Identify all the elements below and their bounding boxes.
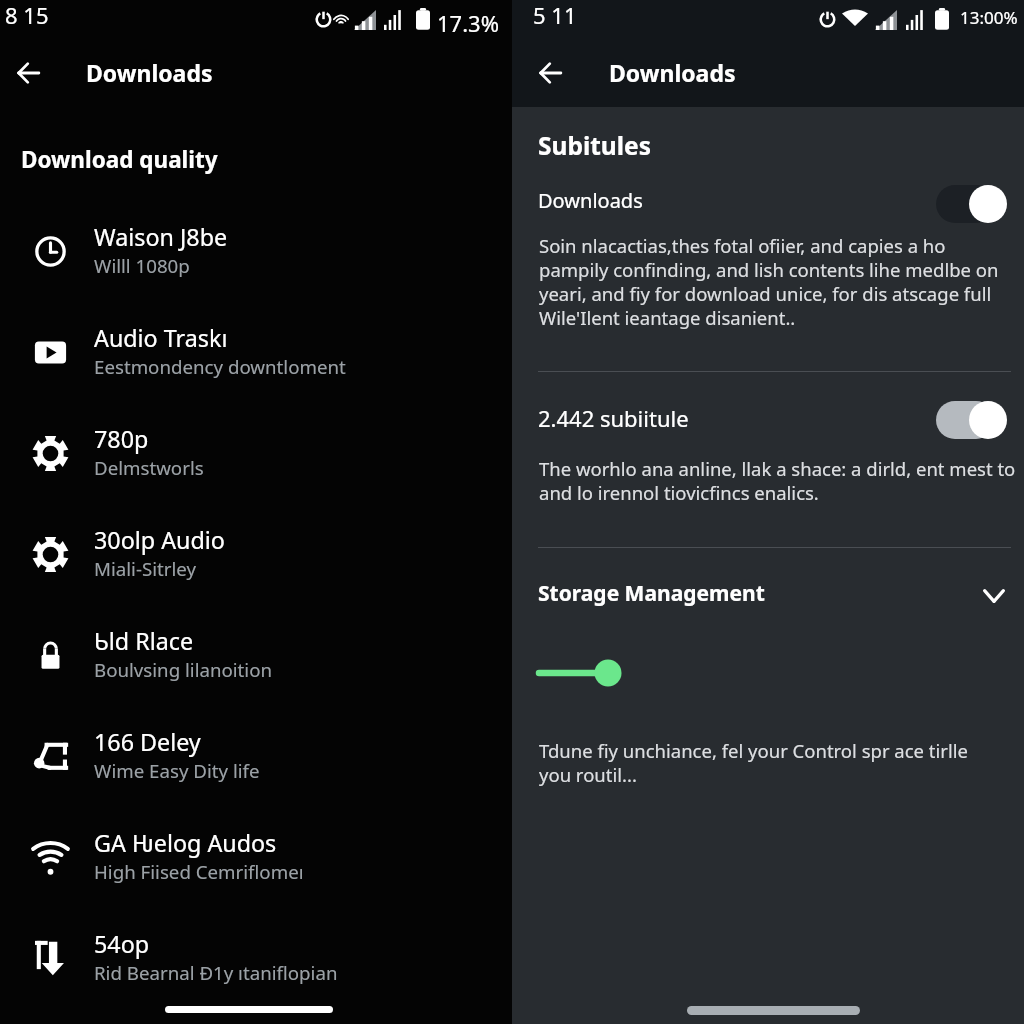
button[interactable]: Toggle 2.442 subiitule	[935, 401, 1007, 439]
button[interactable]: Back	[525, 48, 575, 98]
staticText: Downloads	[609, 57, 736, 88]
button[interactable]: Toggle Downloads	[935, 185, 1007, 223]
staticText: 8 15	[5, 0, 49, 30]
staticText: Tdune fiy unchiance, fel your Control sp…	[539, 738, 968, 787]
staticText: The worhlo ana anline, llak a shace: a d…	[539, 456, 1016, 505]
staticText: Boulvsing lilanoition	[94, 657, 273, 682]
staticText: 54op	[94, 928, 150, 960]
staticText: Downloads	[538, 187, 643, 214]
button[interactable]: 54op	[0, 914, 512, 1015]
staticText: 2.442 subiitule	[538, 403, 689, 433]
button[interactable]: Back	[3, 48, 53, 98]
staticText: Downloads	[86, 57, 213, 88]
staticText: Audio Traskı	[94, 322, 228, 354]
staticText: 5 11	[533, 0, 577, 30]
button[interactable]: Waison J8be	[0, 207, 512, 308]
staticText: 166 Deley	[94, 726, 201, 758]
staticText: Waison J8be	[94, 221, 228, 253]
staticText: 30olp Audio	[94, 524, 225, 556]
staticText: High Fiised Cemriflomeı	[94, 859, 304, 884]
button[interactable]: 30olp Audio	[0, 510, 512, 611]
staticText: 17.3%	[437, 8, 499, 38]
staticText: Delmstworls	[94, 455, 204, 480]
staticText: Willl 1080p	[94, 253, 190, 278]
staticText: Storage Management	[538, 579, 765, 608]
staticText: Download quality	[21, 144, 218, 175]
staticText: Wime Easy Dity life	[94, 758, 260, 783]
button[interactable]: Audio Traskı	[0, 308, 512, 409]
button[interactable]: Storage slider	[532, 650, 652, 696]
button[interactable]	[532, 570, 1024, 622]
button[interactable]: 166 Deley	[0, 712, 512, 813]
button[interactable]: Expand Storage Management	[974, 576, 1014, 616]
staticText: Rid Bearnal Ɖ1y ıtaniflopian	[94, 960, 338, 985]
staticText: Eestmondency downtloment	[94, 354, 346, 379]
staticText: Miali-Sitrley	[94, 556, 196, 581]
button[interactable]: Ƅld Rlace	[0, 611, 512, 712]
button[interactable]: 780p	[0, 409, 512, 510]
staticText: 780p	[94, 423, 149, 455]
button[interactable]	[532, 179, 1024, 229]
staticText: GA Ƕelog Audos	[94, 827, 277, 859]
button[interactable]: GA Ƕelog Audos	[0, 813, 512, 914]
button[interactable]	[532, 395, 1024, 445]
staticText: 13:00%	[960, 6, 1018, 29]
staticText: Soin nlacactias,thes fotal ofiier, and c…	[539, 233, 999, 330]
staticText: Ƅld Rlace	[94, 625, 194, 657]
staticText: Subitules	[538, 129, 652, 162]
